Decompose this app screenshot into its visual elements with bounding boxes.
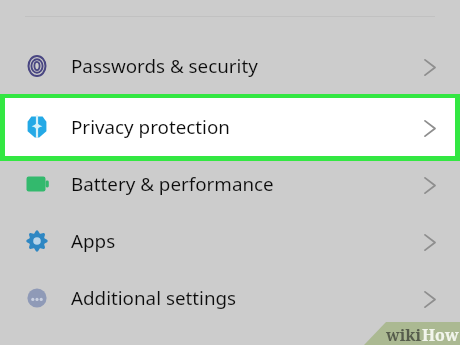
other: Open Passwords & security	[420, 56, 440, 76]
button[interactable]: Passwords & security	[0, 38, 460, 94]
button[interactable]: Battery & performance	[0, 156, 460, 212]
other: Open Battery & performance	[420, 174, 440, 194]
staticText: Passwords & security	[71, 53, 258, 79]
staticText: Apps	[71, 228, 116, 254]
staticText: Additional settings	[71, 285, 237, 311]
other: Open Privacy protection	[420, 117, 440, 137]
button[interactable]: Additional settings	[0, 270, 460, 326]
staticText: Privacy protection	[71, 114, 230, 140]
staticText: Battery & performance	[71, 171, 274, 197]
button[interactable]: Privacy protection	[0, 99, 460, 155]
button[interactable]: Apps	[0, 213, 460, 269]
other: Open Apps	[420, 231, 440, 251]
other: Open Additional settings	[420, 288, 440, 308]
staticText: How	[422, 324, 459, 345]
staticText: wiki	[386, 324, 422, 345]
